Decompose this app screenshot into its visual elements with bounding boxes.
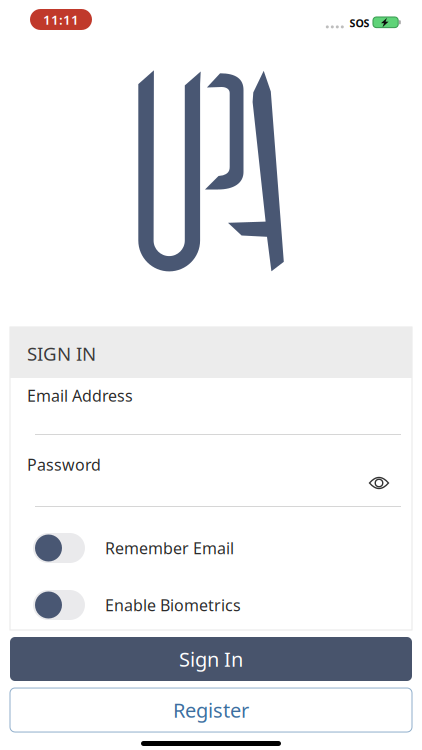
staticText: Email Address	[27, 385, 133, 406]
staticText: Enable Biometrics	[105, 594, 241, 616]
staticText: Password	[27, 454, 101, 475]
button[interactable]: Register	[10, 688, 412, 732]
button[interactable]: Sign In	[10, 637, 412, 681]
staticText: SOS	[349, 16, 369, 30]
button[interactable]: Enable Biometrics	[10, 581, 412, 629]
staticText: Remember Email	[105, 537, 234, 559]
staticText: Sign In	[179, 646, 243, 672]
button[interactable]: Remember Email	[10, 524, 412, 572]
staticText: 11:11	[43, 11, 79, 28]
staticText: Register	[173, 697, 249, 723]
staticText: SIGN IN	[27, 341, 96, 366]
button[interactable]: Show password	[360, 466, 398, 500]
